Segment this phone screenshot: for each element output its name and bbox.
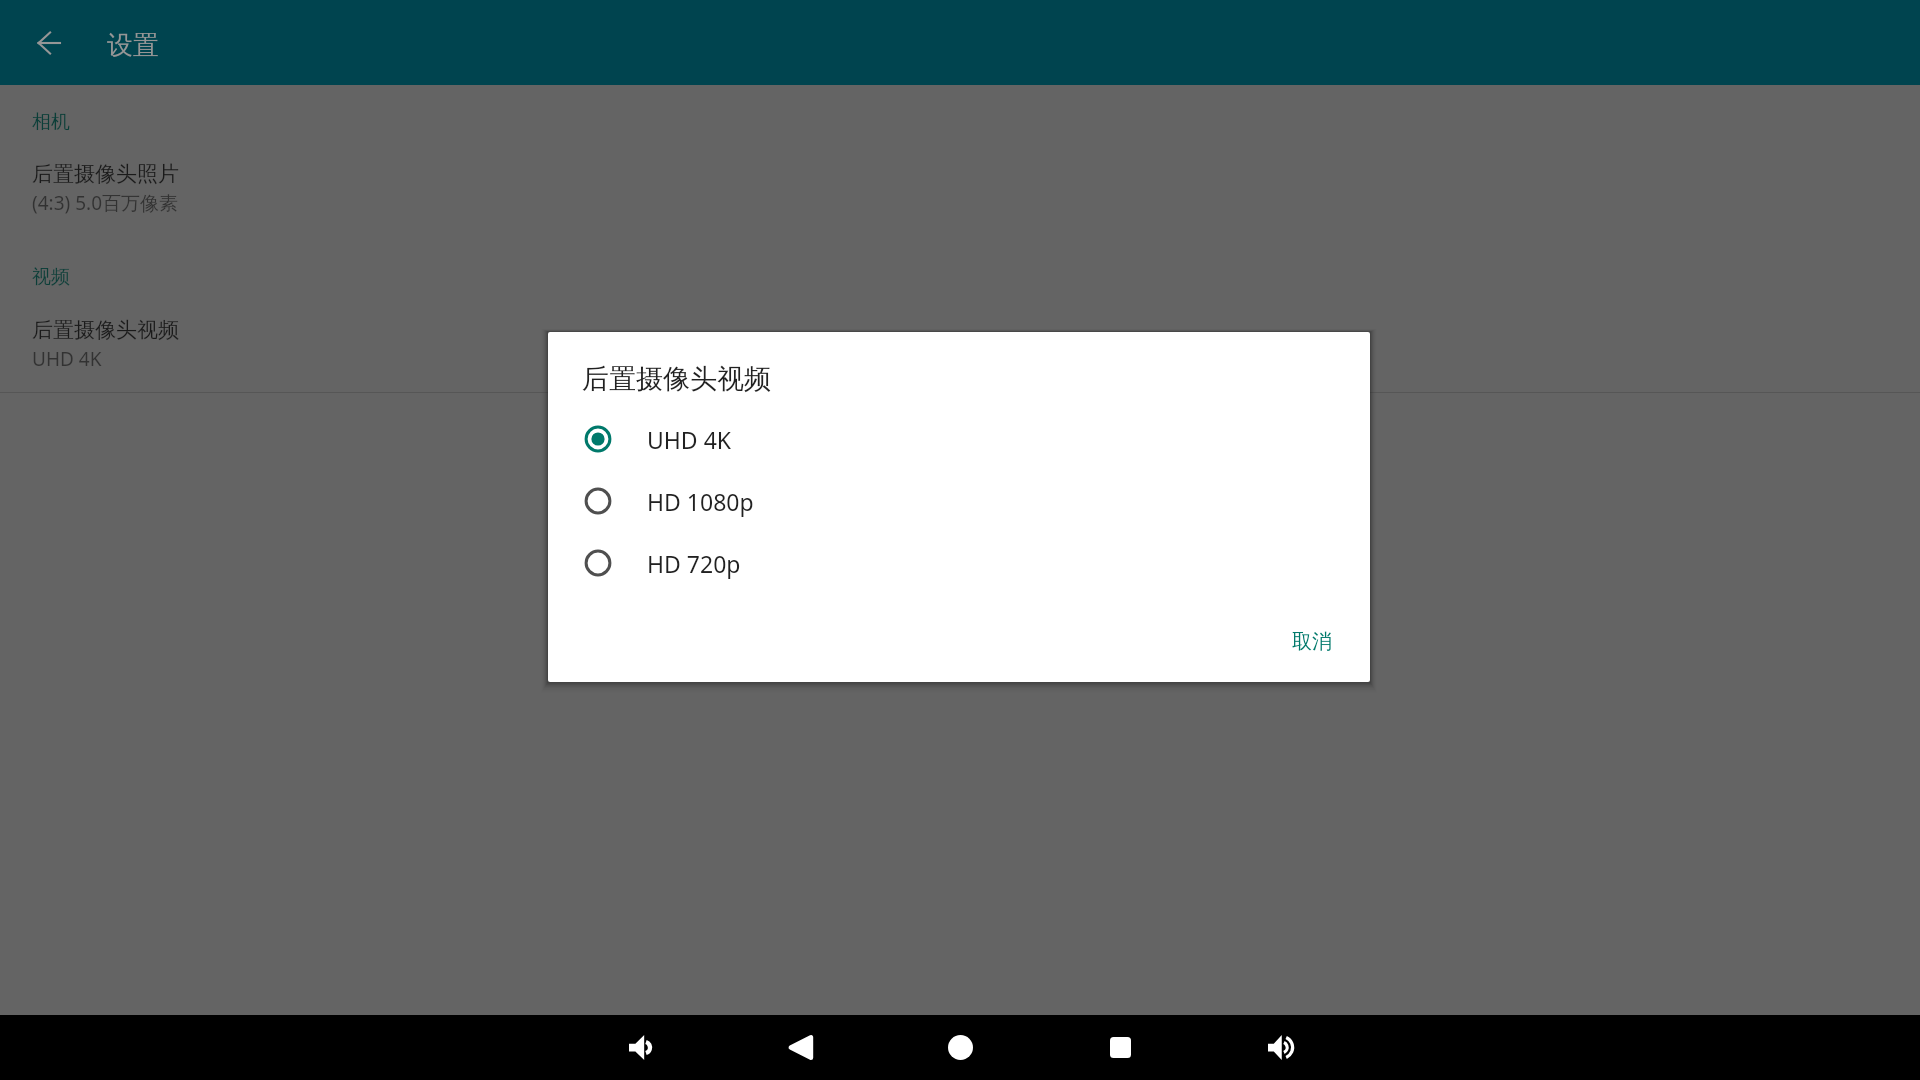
button[interactable]: Recents xyxy=(1040,1015,1200,1080)
button[interactable]: HD 1080p xyxy=(548,470,1370,532)
staticText: UHD 4K xyxy=(647,424,732,455)
staticText: 取消 xyxy=(1292,629,1332,654)
button[interactable]: 后置摄像头视频 xyxy=(0,311,1920,378)
button[interactable]: 取消 xyxy=(1274,618,1350,665)
button[interactable]: 后置摄像头照片 xyxy=(0,155,1920,222)
staticText: 后置摄像头视频 xyxy=(32,317,179,343)
staticText: UHD 4K xyxy=(32,346,102,372)
button[interactable]: Back xyxy=(720,1015,880,1080)
button[interactable]: Back xyxy=(25,19,73,67)
staticText: HD 720p xyxy=(647,548,741,579)
button[interactable]: Home xyxy=(880,1015,1040,1080)
staticText: HD 1080p xyxy=(647,486,754,517)
staticText: 视频 xyxy=(32,265,70,289)
staticText: 后置摄像头视频 xyxy=(582,362,771,396)
button[interactable]: HD 720p xyxy=(548,532,1370,594)
staticText: 后置摄像头照片 xyxy=(32,161,179,187)
button[interactable]: UHD 4K xyxy=(548,408,1370,470)
staticText: 相机 xyxy=(32,110,70,134)
button[interactable]: Volume down xyxy=(560,1015,720,1080)
staticText: (4:3) 5.0百万像素 xyxy=(32,190,178,216)
button[interactable]: Volume up xyxy=(1200,1015,1360,1080)
staticText: 设置 xyxy=(107,29,159,62)
